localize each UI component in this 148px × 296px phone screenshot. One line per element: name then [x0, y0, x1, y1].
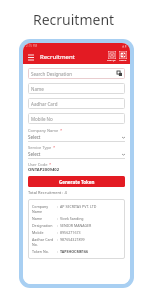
button[interactable]: Aadhar Card — [28, 98, 125, 109]
button[interactable]: Scan QR — [107, 51, 116, 62]
staticText: Vivek Sanding — [60, 216, 84, 221]
staticText: Name — [31, 86, 44, 92]
staticText: Mobile No — [31, 116, 53, 122]
staticText: * — [59, 128, 63, 133]
staticText: Company Name — [32, 204, 57, 214]
staticText: : — [57, 237, 60, 242]
staticText: Designation — [32, 223, 57, 228]
button[interactable]: Name — [28, 83, 125, 94]
staticText: Total Recruitment : 4 — [28, 190, 67, 195]
staticText: Select — [28, 151, 41, 157]
staticText: Logout — [119, 59, 127, 62]
staticText: : — [57, 216, 60, 221]
staticText: Recruitment — [40, 53, 75, 61]
staticText: Service Type — [28, 145, 52, 150]
staticText: Recruitment — [33, 10, 115, 29]
staticText: Name — [32, 216, 57, 221]
staticText: Company Name — [28, 128, 59, 133]
staticText: 2:15 PM — [26, 44, 38, 48]
button[interactable]: Logout — [119, 51, 127, 62]
button[interactable]: Service Type — [28, 145, 125, 159]
button[interactable]: Generate Token — [28, 176, 125, 187]
staticText: TAPSHOCM8166 — [60, 249, 89, 254]
staticText: 8956271673 — [60, 230, 81, 235]
staticText: Mobile — [32, 230, 57, 235]
staticText: Scan QR — [107, 59, 116, 62]
staticText: * — [52, 145, 56, 150]
staticText: : — [57, 230, 60, 235]
staticText: ONTAP2009402 — [28, 167, 60, 173]
staticText: Generate Token — [59, 179, 95, 185]
button[interactable]: Company Name — [28, 128, 125, 142]
staticText: Search Designation — [31, 71, 72, 77]
button[interactable]: Menu — [27, 53, 35, 61]
staticText: Aadhar Card — [31, 101, 58, 107]
staticText: AP SECRITAS PVT. LTD — [60, 204, 97, 209]
button[interactable]: Mobile No — [28, 113, 125, 124]
staticText: SENIOR MANAGER — [60, 223, 92, 228]
staticText: * — [48, 162, 52, 167]
staticText: 987654321899 — [60, 237, 85, 242]
staticText: : — [57, 223, 60, 228]
staticText: Token No. — [32, 249, 57, 254]
button[interactable]: Search Designation — [28, 68, 125, 79]
staticText: : — [57, 204, 60, 209]
staticText: ▲ ▮ — [122, 44, 127, 48]
staticText: User Code — [28, 162, 48, 167]
staticText: Select — [28, 134, 41, 140]
staticText: : — [57, 249, 60, 254]
staticText: Aadhar Card No. — [32, 237, 57, 247]
